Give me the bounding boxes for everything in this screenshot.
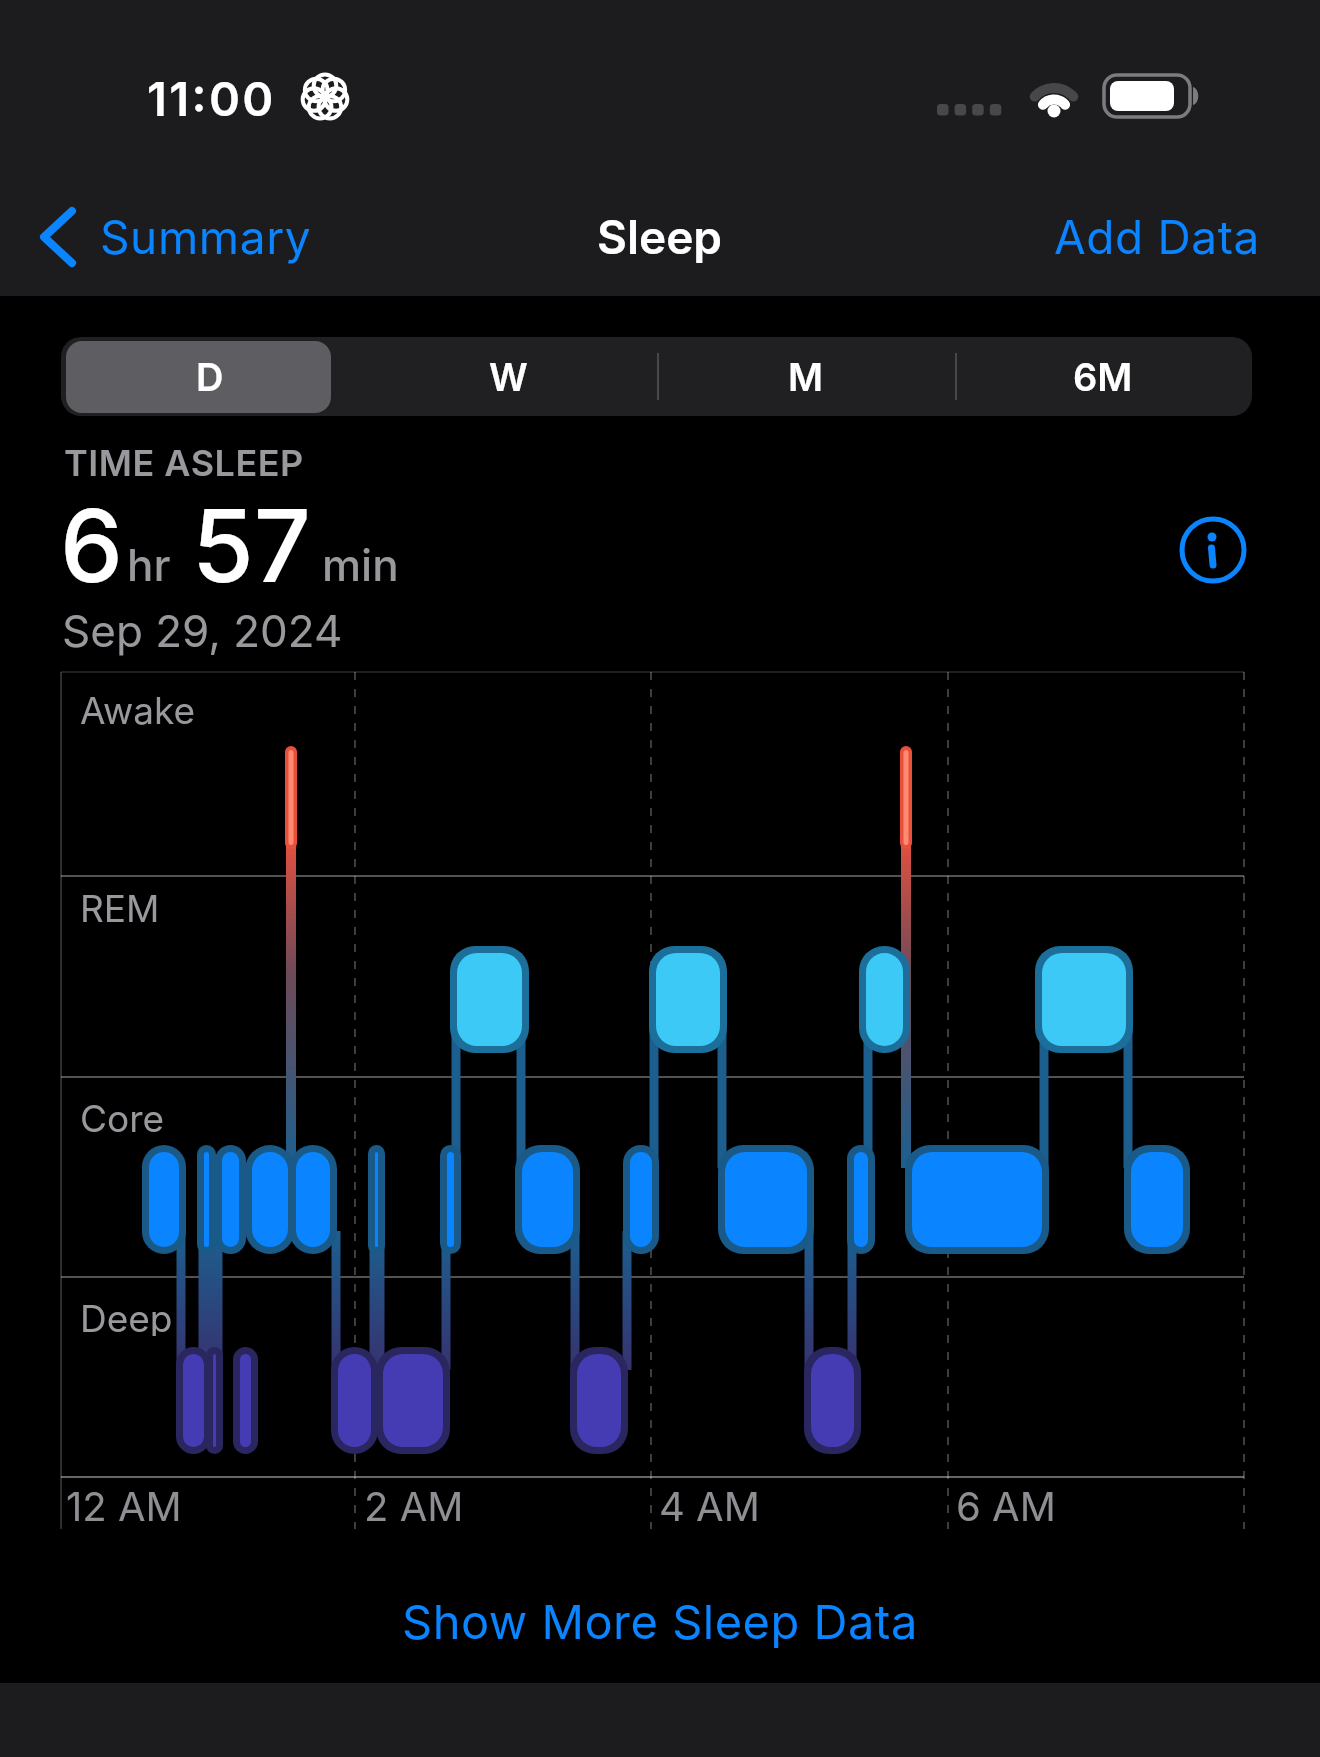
staticText: Add Data (1054, 209, 1260, 265)
staticText: TIME ASLEEP (64, 441, 304, 481)
button[interactable]: D (61, 341, 359, 413)
staticText: W (489, 354, 528, 400)
button[interactable] (1178, 515, 1248, 585)
button[interactable] (66, 341, 331, 413)
staticText: Summary (100, 209, 312, 265)
button[interactable] (36, 205, 84, 269)
staticText: D (196, 354, 224, 400)
staticText: Sep 29, 2024 (62, 604, 343, 656)
staticText: Show More Sleep Data (402, 1593, 918, 1649)
button[interactable]: Summary (100, 208, 340, 266)
staticText: 11:00 (147, 70, 276, 124)
staticText: 12 AM (66, 1482, 182, 1528)
button[interactable]: 6M (954, 341, 1252, 413)
button[interactable]: M (657, 341, 955, 413)
staticText: hr (127, 538, 171, 591)
button[interactable]: Show More Sleep Data (402, 1593, 918, 1649)
staticText: Awake (80, 688, 196, 728)
staticText: 6 (60, 485, 123, 597)
staticText: M (788, 354, 824, 400)
staticText: 6 AM (956, 1482, 1056, 1528)
staticText: Sleep (597, 209, 723, 265)
staticText: Core (80, 1096, 165, 1136)
staticText: min (322, 538, 399, 591)
staticText: 6M (1073, 354, 1133, 400)
staticText: REM (80, 886, 160, 926)
staticText: 2 AM (364, 1482, 464, 1528)
staticText: Deep (80, 1296, 173, 1336)
staticText: 4 AM (659, 1482, 760, 1528)
button[interactable]: W (359, 341, 657, 413)
button[interactable]: Add Data (1000, 208, 1260, 266)
staticText: 57 (192, 485, 311, 597)
